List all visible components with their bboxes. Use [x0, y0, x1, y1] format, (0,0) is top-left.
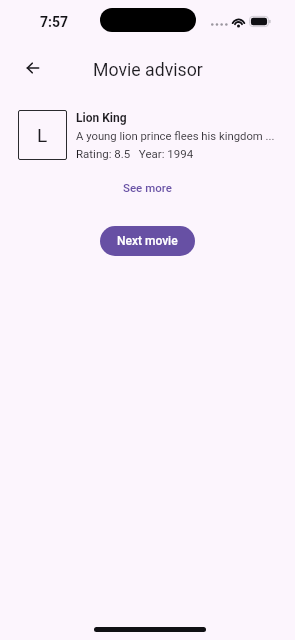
button[interactable]: Next movie	[100, 226, 195, 256]
staticText: Rating: 8.5 Year: 1994	[76, 147, 194, 160]
staticText: Movie advisor	[93, 60, 203, 81]
staticText: Lion King	[76, 111, 127, 125]
staticText: See more	[123, 181, 172, 194]
button[interactable]: Back	[19, 53, 49, 83]
staticText: A young lion prince flees his kingdom ..…	[76, 130, 275, 143]
staticText: L	[37, 124, 48, 146]
staticText: Next movie	[117, 234, 178, 248]
staticText: 7:57	[40, 14, 69, 30]
button[interactable]: See more	[117, 178, 178, 197]
